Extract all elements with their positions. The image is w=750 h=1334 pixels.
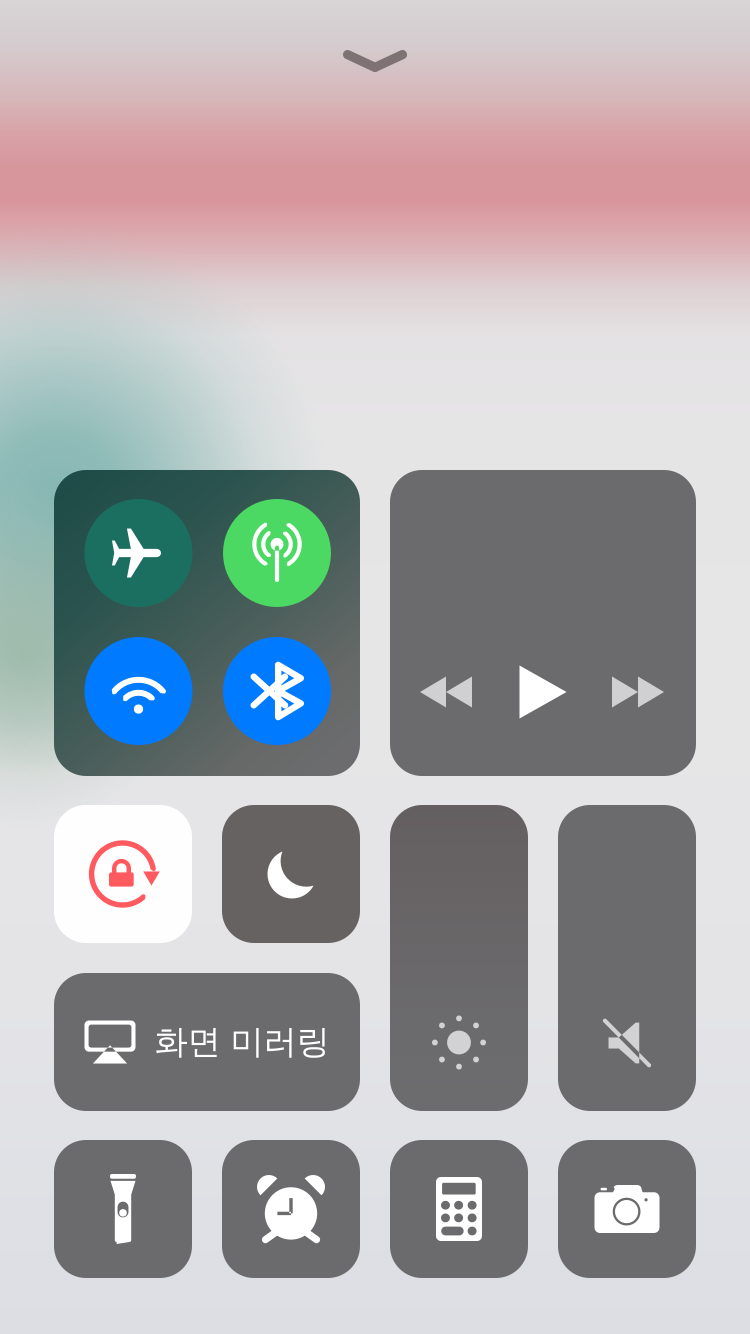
- button[interactable]: Play: [503, 652, 583, 732]
- staticText: 화면 미러링: [154, 1021, 329, 1062]
- button[interactable]: Screen Mirroring: [54, 973, 360, 1111]
- button[interactable]: Bluetooth: [223, 637, 331, 745]
- button[interactable]: Cellular Data: [223, 499, 331, 607]
- button[interactable]: Do Not Disturb: [222, 805, 360, 943]
- button[interactable]: Airplane Mode: [84, 499, 192, 607]
- button[interactable]: Volume: [558, 805, 696, 1111]
- button[interactable]: Rotation Lock: [54, 805, 192, 943]
- button[interactable]: Camera: [558, 1140, 696, 1278]
- button[interactable]: Brightness: [390, 805, 528, 1111]
- button[interactable]: Previous Track: [406, 652, 486, 732]
- button[interactable]: Timer: [222, 1140, 360, 1278]
- button[interactable]: Wi-Fi: [84, 637, 192, 745]
- button[interactable]: Next Track: [598, 652, 678, 732]
- button[interactable]: Flashlight: [54, 1140, 192, 1278]
- button[interactable]: Calculator: [390, 1140, 528, 1278]
